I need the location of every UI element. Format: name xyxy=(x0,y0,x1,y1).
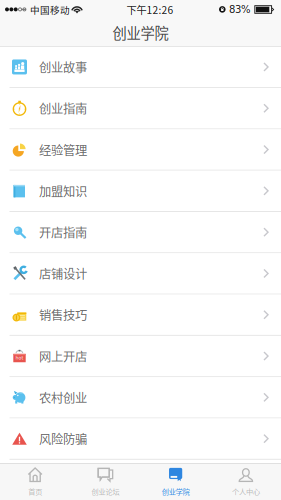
button[interactable]: 农村创业 xyxy=(0,377,281,418)
staticText: 销售技巧 xyxy=(39,306,87,324)
staticText: 个人中心 xyxy=(232,486,260,497)
button[interactable]: 经验管理 xyxy=(0,129,281,171)
button[interactable]: 创业故事 xyxy=(0,47,281,88)
button[interactable]: 销售技巧 xyxy=(0,295,281,336)
staticText: 开店指南 xyxy=(39,223,87,241)
staticText: 下午12:26 xyxy=(126,2,173,17)
button[interactable]: 首页 xyxy=(0,464,70,500)
staticText: 首页 xyxy=(28,486,42,497)
staticText: 经验管理 xyxy=(39,141,87,158)
staticText: 加盟知识 xyxy=(39,182,87,200)
staticText: 创业指南 xyxy=(39,99,87,117)
staticText: 店铺设计 xyxy=(39,264,87,282)
button[interactable]: 开店指南 xyxy=(0,212,281,253)
button[interactable]: 加盟知识 xyxy=(0,171,281,212)
staticText: 创业学院 xyxy=(162,486,190,497)
button[interactable]: 个人中心 xyxy=(211,464,281,500)
staticText: hot xyxy=(15,355,23,361)
button[interactable]: 创业论坛 xyxy=(70,464,140,500)
button[interactable]: 店铺设计 xyxy=(0,253,281,295)
staticText: 风险防骗 xyxy=(39,430,87,447)
staticText: 83% xyxy=(229,4,251,15)
button[interactable]: hot xyxy=(0,336,281,377)
button[interactable]: 风险防骗 xyxy=(0,418,281,460)
staticText: 创业故事 xyxy=(39,58,87,76)
staticText: 网上开店 xyxy=(39,347,87,365)
staticText: 农村创业 xyxy=(39,388,87,406)
staticText: 创业学院 xyxy=(112,22,168,43)
button[interactable]: 创业指南 xyxy=(0,88,281,129)
staticText: 中国移动 xyxy=(30,2,70,16)
button[interactable]: 创业学院 xyxy=(140,464,211,500)
staticText: 创业论坛 xyxy=(91,486,119,497)
